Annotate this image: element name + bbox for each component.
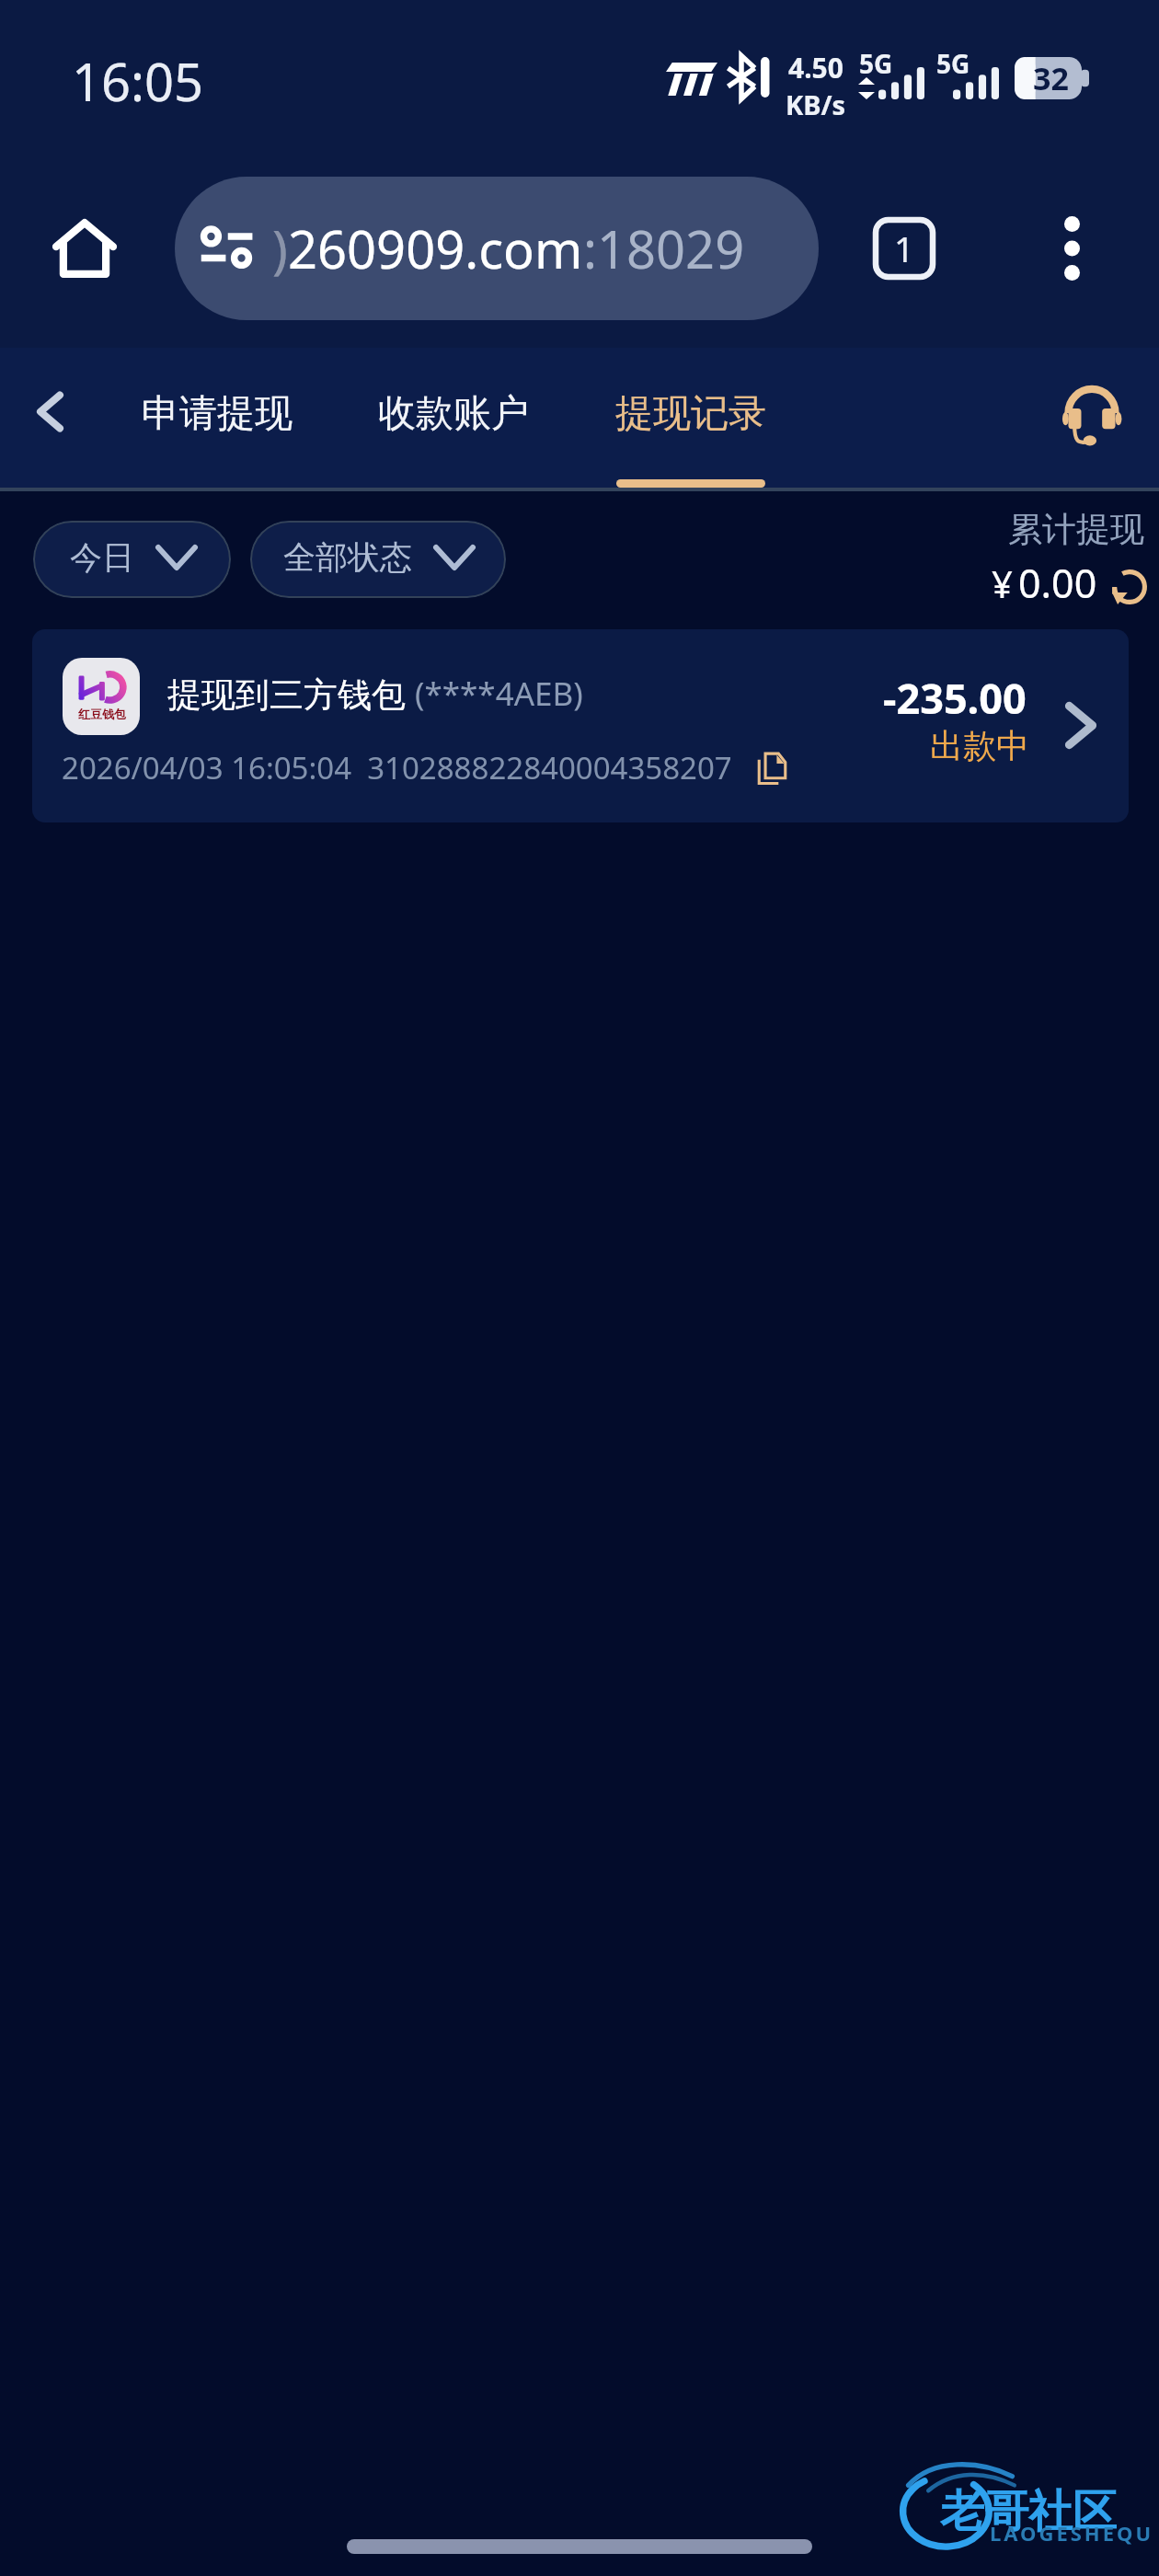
staticText: (****4AEB): [415, 672, 583, 716]
staticText: ): [272, 213, 288, 283]
staticText: 16:05: [72, 46, 204, 116]
staticText: 累计提现: [1008, 508, 1144, 551]
staticText: 收款账户: [378, 390, 529, 438]
staticText: 提现记录: [615, 390, 766, 438]
staticText: :18029: [583, 213, 745, 283]
button[interactable]: 全部状态: [250, 521, 506, 598]
staticText: 32: [1033, 57, 1069, 99]
button[interactable]: ): [175, 177, 819, 320]
staticText: 260909.com: [288, 213, 583, 283]
button[interactable]: 红豆钱包: [32, 629, 1129, 822]
button[interactable]: 收款账户: [378, 348, 529, 491]
staticText: KB/s: [786, 86, 846, 122]
staticText: 申请提现: [142, 390, 293, 438]
button[interactable]: More options: [1027, 204, 1116, 293]
button[interactable]: Tabs: [860, 204, 948, 293]
staticText: 今日: [70, 537, 134, 578]
button[interactable]: 申请提现: [142, 348, 293, 491]
button[interactable]: Refresh: [1106, 563, 1153, 611]
button[interactable]: Home: [40, 204, 129, 293]
staticText: 出款中: [930, 725, 1029, 766]
staticText: LAOGESHEQU: [990, 2519, 1154, 2547]
staticText: 5G: [936, 46, 970, 81]
staticText: 0.00: [1018, 556, 1097, 610]
staticText: 提现到三方钱包: [167, 673, 406, 717]
staticText: 4.50: [788, 49, 843, 86]
button[interactable]: 提现记录: [615, 348, 766, 491]
button[interactable]: Back: [9, 371, 92, 454]
staticText: 红豆钱包: [78, 707, 126, 721]
staticText: 5G: [859, 46, 893, 81]
staticText: 1: [894, 224, 914, 272]
staticText: -235.00: [883, 670, 1027, 726]
staticText: 2026/04/03 16:05:04 31028882284000435820…: [62, 747, 732, 788]
button[interactable]: Customer service: [1048, 374, 1136, 466]
staticText: ¥: [992, 558, 1013, 608]
staticText: 老哥社区: [940, 2484, 1117, 2539]
button[interactable]: 今日: [33, 521, 231, 598]
staticText: 全部状态: [283, 537, 412, 578]
